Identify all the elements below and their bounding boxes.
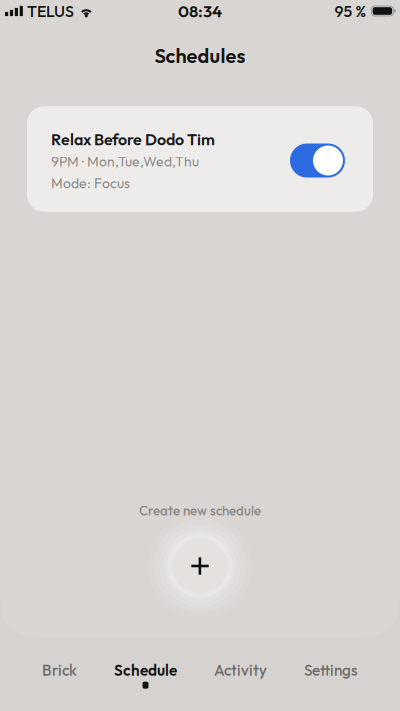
staticText: Settings: [304, 660, 358, 680]
button[interactable]: Schedule: [110, 653, 181, 695]
staticText: Relax Before Dodo Tim: [51, 129, 215, 149]
staticText: Brick: [42, 660, 77, 680]
button[interactable]: Activity: [210, 653, 271, 695]
button[interactable]: Brick: [38, 653, 81, 695]
staticText: 95 %: [335, 1, 367, 21]
staticText: Activity: [214, 660, 267, 680]
staticText: TELUS: [27, 1, 74, 21]
staticText: Schedules: [154, 43, 245, 68]
button[interactable]: Relax Before Dodo Tim: [27, 106, 373, 212]
staticText: Create new schedule: [139, 502, 261, 519]
button[interactable]: Settings: [300, 653, 362, 695]
staticText: Schedule: [114, 660, 177, 680]
staticText: 9PM · Mon,Tue,Wed,Thu: [51, 153, 199, 170]
button[interactable]: Create new schedule: [148, 514, 252, 618]
staticText: 08:34: [178, 0, 222, 21]
staticText: Mode: Focus: [51, 174, 130, 192]
